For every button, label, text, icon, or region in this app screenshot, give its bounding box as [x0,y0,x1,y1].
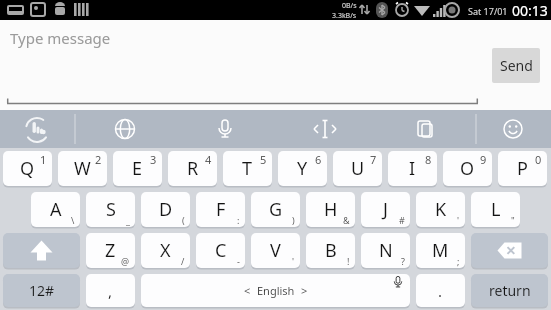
button[interactable]: K [416,192,465,227]
staticText: " [511,214,515,226]
staticText: 6 [315,152,322,167]
staticText: V [270,238,281,263]
button[interactable]: L [471,192,520,227]
button[interactable]: O [443,151,492,186]
staticText: 3.3kB/s [332,11,357,20]
staticText: 5 [260,152,267,167]
staticText: 00:13 [512,1,548,20]
staticText: S [106,197,116,222]
button[interactable]: D [141,192,190,227]
button[interactable] [275,110,375,148]
staticText: I [409,156,416,181]
button[interactable]: R [168,151,217,186]
button[interactable]: P [498,151,547,186]
staticText: 0B/s [342,1,357,11]
button[interactable] [75,110,175,148]
button[interactable]: X [141,233,190,268]
button[interactable]: , [86,274,135,307]
button[interactable] [3,233,80,268]
staticText: C [215,238,227,263]
staticText: T [242,156,253,181]
button[interactable] [0,110,75,148]
staticText: B [325,238,337,263]
staticText: X [160,238,171,263]
button[interactable]: 12# [3,274,80,307]
staticText: E [132,156,143,181]
staticText: 0 [535,152,542,167]
staticText: @ [121,255,130,267]
staticText: 7 [370,152,377,167]
button[interactable]: Send [492,48,540,83]
staticText: / [181,255,185,267]
button[interactable]: V [251,233,300,268]
staticText: ( [182,214,185,226]
button[interactable]: S [86,192,135,227]
staticText: ) [292,214,295,226]
staticText: P [517,156,528,181]
staticText: ' [292,255,295,267]
staticText: M [432,238,449,263]
staticText: Z [105,238,116,263]
button[interactable]: W [58,151,107,186]
button[interactable]: A [31,192,80,227]
staticText: < [244,283,251,298]
button[interactable] [471,233,548,268]
button[interactable]: B [306,233,355,268]
staticText: H [324,197,338,222]
staticText: _ [126,214,130,226]
staticText: ' [457,214,460,226]
staticText: O [460,156,475,181]
button[interactable]: H [306,192,355,227]
staticText: F [216,197,226,222]
staticText: : [237,214,240,226]
button[interactable]: J [361,192,410,227]
staticText: Y [297,156,308,181]
staticText: W [74,156,91,181]
staticText: 1 [40,152,47,167]
staticText: > [301,283,308,298]
staticText: . [438,281,443,301]
button[interactable] [375,110,476,148]
staticText: \ [71,214,75,226]
staticText: J [383,197,388,222]
button[interactable]: return [471,274,548,307]
button[interactable]: N [361,233,410,268]
staticText: 3 [150,152,157,167]
staticText: Send [500,56,533,75]
staticText: , [108,281,113,301]
button[interactable]: T [223,151,272,186]
staticText: ; [457,255,460,267]
staticText: Sat 17/01 [468,5,508,17]
button[interactable]: . [416,274,465,307]
button[interactable]: C [196,233,245,268]
button[interactable] [476,110,551,148]
staticText: U [351,156,365,181]
staticText: # [399,214,405,226]
staticText: - [237,255,240,267]
staticText: R [187,156,199,181]
staticText: Q [20,156,35,181]
button[interactable]: Y [278,151,327,186]
button[interactable]: I [388,151,437,186]
staticText: Type message [10,28,111,48]
button[interactable]: M [416,233,465,268]
button[interactable]: E [113,151,162,186]
staticText: D [159,197,173,222]
staticText: return [489,281,531,300]
staticText: & [343,214,350,226]
button[interactable]: F [196,192,245,227]
staticText: A [50,197,62,222]
staticText: 12# [29,281,55,300]
button[interactable]: < [141,274,410,307]
button[interactable]: Z [86,233,135,268]
staticText: 2 [95,152,102,167]
staticText: 4 [205,152,212,167]
button[interactable]: U [333,151,382,186]
button[interactable] [175,110,275,148]
staticText: ? [401,255,405,267]
staticText: K [435,197,447,222]
staticText: N [379,238,393,263]
button[interactable]: G [251,192,300,227]
staticText: 8 [425,152,432,167]
button[interactable]: Q [3,151,52,186]
